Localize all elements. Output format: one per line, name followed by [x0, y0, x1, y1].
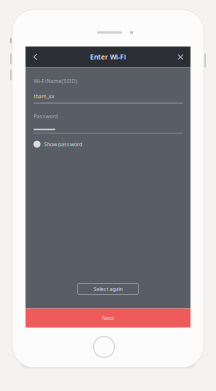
button[interactable]: Select again: [77, 283, 138, 294]
button[interactable]: Show password: [33, 141, 82, 148]
button[interactable]: [33, 129, 182, 134]
button[interactable]: tham_xx: [33, 93, 182, 104]
staticText: tham_xx: [33, 93, 54, 100]
staticText: Password: [33, 113, 57, 120]
button[interactable]: Close: [172, 46, 188, 67]
staticText: Enter Wi-Fi: [90, 53, 126, 61]
button[interactable]: Back: [27, 46, 43, 67]
staticText: Wi-Fi Name(SSID): [33, 77, 77, 85]
staticText: Show password: [44, 141, 82, 148]
button[interactable]: Next: [25, 308, 190, 327]
staticText: Next: [102, 314, 114, 322]
staticText: Select again: [93, 285, 122, 293]
